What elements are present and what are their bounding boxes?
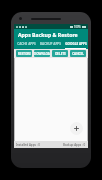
staticText: GOOGLE APPS xyxy=(65,42,87,46)
staticText: Backup Apps : 0 xyxy=(63,143,86,147)
button[interactable]: DOWNLOAD xyxy=(34,50,50,57)
button[interactable]: Add xyxy=(70,122,83,135)
staticText: CACHE APPS xyxy=(17,42,36,46)
button[interactable]: CANCEL xyxy=(70,50,86,57)
staticText: Apps Backup & Restore xyxy=(18,31,78,38)
button[interactable]: RESTORE xyxy=(16,50,32,57)
button[interactable]: BACKUP APPS xyxy=(38,40,63,49)
staticText: RESTORE xyxy=(18,52,31,56)
staticText: CANCEL xyxy=(72,52,84,56)
staticText: DELETE xyxy=(55,52,66,56)
staticText: DOWNLOAD xyxy=(34,52,50,56)
button[interactable]: CACHE APPS xyxy=(14,40,38,49)
staticText: Installed Apps : 0 xyxy=(16,143,41,147)
staticText: BACKUP APPS xyxy=(40,42,61,46)
button[interactable]: DELETE xyxy=(52,50,68,57)
button[interactable]: GOOGLE APPS xyxy=(63,40,88,49)
staticText: 100% xyxy=(74,25,81,29)
